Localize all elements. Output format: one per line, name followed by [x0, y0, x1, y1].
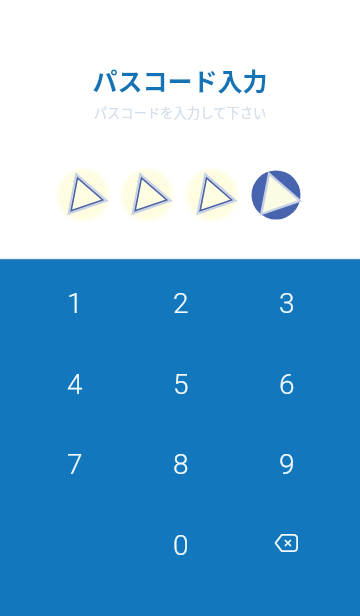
staticText: パスコード入力 [0, 62, 360, 98]
staticText: 6 [279, 368, 295, 401]
staticText: 9 [279, 448, 295, 481]
button[interactable]: 4 [30, 344, 120, 424]
button[interactable]: 3 [242, 263, 332, 343]
button[interactable]: 6 [242, 344, 332, 424]
button[interactable]: 7 [30, 424, 120, 504]
button[interactable]: 8 [136, 424, 226, 504]
button[interactable]: 1 [30, 263, 120, 343]
staticText: 8 [173, 448, 189, 481]
button[interactable]: 5 [136, 344, 226, 424]
button[interactable]: 0 [136, 505, 226, 585]
button[interactable]: 9 [242, 424, 332, 504]
staticText: 1 [67, 287, 83, 320]
button[interactable]: Delete [241, 503, 331, 583]
staticText: 3 [279, 287, 295, 320]
staticText: 7 [67, 448, 83, 481]
staticText: 5 [173, 368, 189, 401]
staticText: パスコードを入力して下さい [0, 103, 360, 122]
staticText: 0 [173, 529, 189, 562]
staticText: 4 [67, 368, 83, 401]
staticText: 2 [173, 287, 189, 320]
button[interactable]: 2 [136, 263, 226, 343]
other: Backspace [274, 534, 298, 552]
